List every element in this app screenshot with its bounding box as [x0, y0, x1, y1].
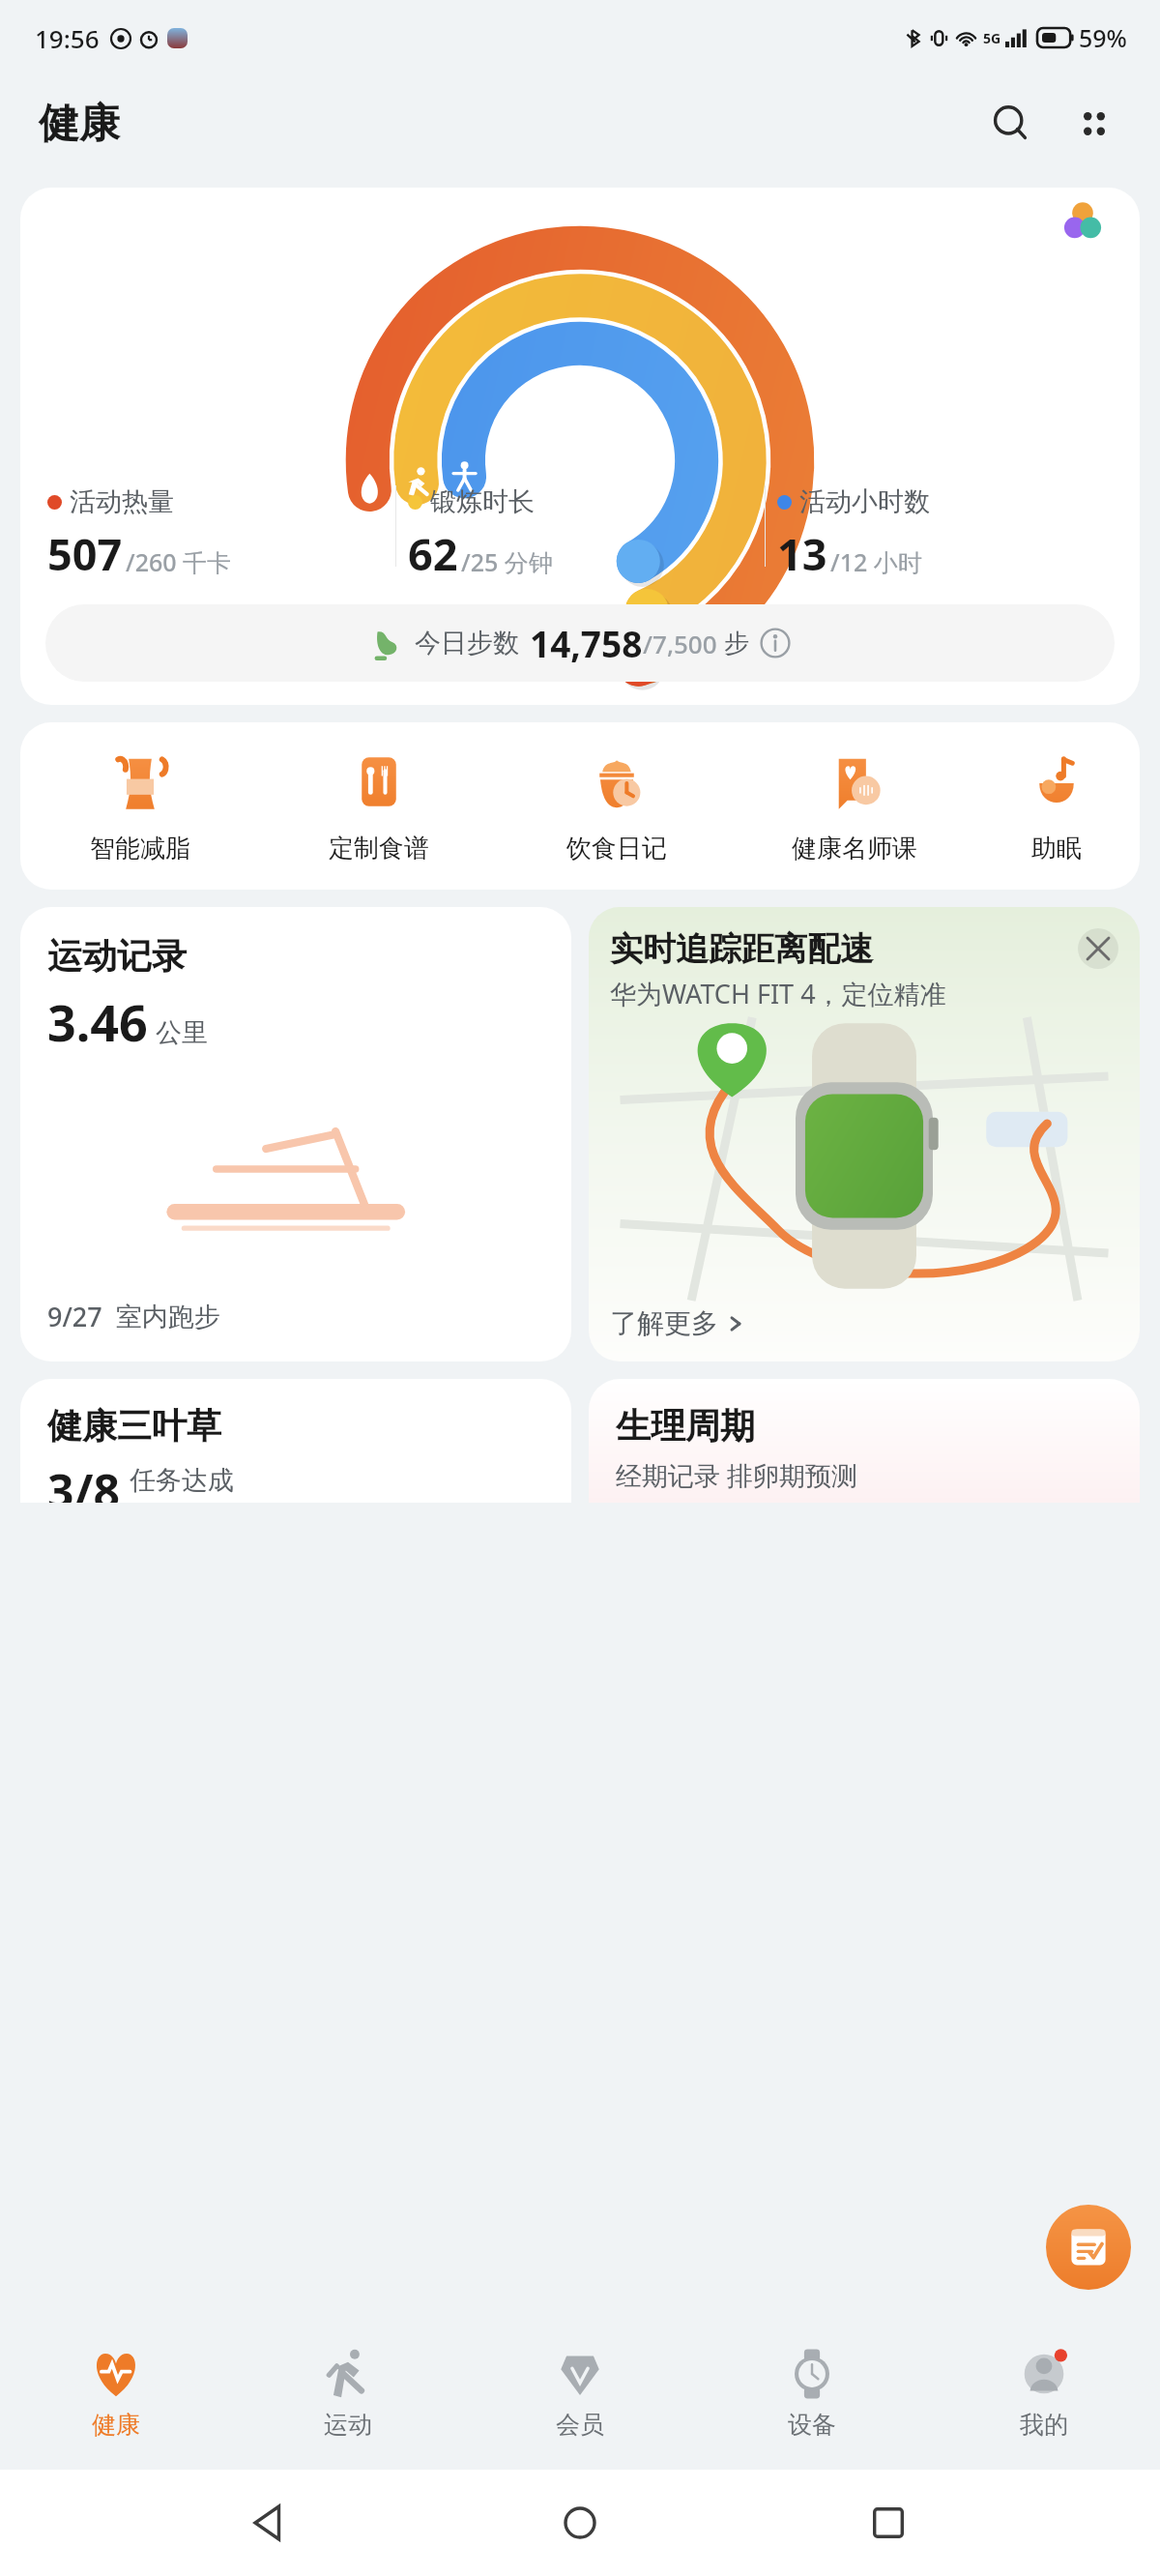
button[interactable]: 我的: [928, 2315, 1160, 2470]
staticText: 5G: [983, 29, 1001, 47]
staticText: 今日步数: [415, 627, 519, 659]
button[interactable]: Add record: [1046, 2205, 1131, 2290]
button[interactable]: 助眠: [973, 747, 1140, 864]
staticText: 会员: [556, 2410, 604, 2440]
button[interactable]: 运动记录: [20, 907, 571, 1361]
button[interactable]: 设备: [696, 2315, 928, 2470]
button[interactable]: 会员: [464, 2315, 696, 2470]
staticText: 59%: [1079, 21, 1127, 54]
button[interactable]: More options: [1063, 93, 1125, 155]
staticText: 活动小时数: [799, 485, 930, 518]
button[interactable]: 活动热量: [20, 188, 1140, 705]
button[interactable]: Search: [980, 93, 1042, 155]
staticText: /7,500: [643, 627, 717, 660]
staticText: 14,758: [530, 619, 643, 667]
button[interactable]: 健康名师课: [736, 747, 973, 864]
staticText: 设备: [788, 2410, 836, 2440]
staticText: 室内跑步: [116, 1301, 220, 1333]
button[interactable]: Health indicators: [1029, 188, 1136, 253]
button[interactable]: 了解更多: [610, 1306, 744, 1340]
button[interactable]: Recents: [852, 2486, 925, 2560]
button[interactable]: 智能减脂: [20, 747, 259, 864]
staticText: /25 分钟: [461, 545, 553, 578]
staticText: 507: [47, 524, 123, 583]
staticText: /12 小时: [830, 545, 922, 578]
button[interactable]: Close ad: [1078, 928, 1118, 969]
staticText: 健康名师课: [792, 833, 917, 864]
staticText: 运动记录: [47, 934, 187, 978]
button[interactable]: 定制食谱: [259, 747, 498, 864]
button[interactable]: 生理周期: [589, 1379, 1140, 1503]
staticText: 62: [408, 524, 458, 583]
staticText: 公里: [156, 1016, 208, 1049]
staticText: 华为WATCH FIT 4，定位精准: [610, 976, 946, 1011]
staticText: 健康: [92, 2410, 140, 2440]
staticText: 生理周期: [616, 1404, 755, 1448]
staticText: 我的: [1020, 2410, 1068, 2440]
staticText: 健康三叶草: [47, 1404, 221, 1448]
staticText: 3.46: [47, 987, 148, 1056]
staticText: 活动热量: [70, 485, 174, 518]
staticText: 3/8: [47, 1459, 120, 1503]
staticText: 运动: [324, 2410, 372, 2440]
button[interactable]: 运动: [232, 2315, 464, 2470]
staticText: 了解更多: [610, 1306, 718, 1340]
staticText: 实时追踪距离配速: [610, 928, 1078, 970]
staticText: 经期记录 排卵期预测: [616, 1457, 858, 1493]
staticText: 任务达成: [130, 1464, 234, 1497]
button[interactable]: 实时追踪距离配速: [589, 907, 1140, 1361]
staticText: 9/27: [47, 1299, 102, 1334]
button[interactable]: 今日步数: [45, 604, 1115, 682]
staticText: 健康: [39, 99, 120, 150]
staticText: 饮食日记: [566, 833, 667, 864]
staticText: 19:56: [35, 21, 100, 55]
button[interactable]: 健康: [0, 2315, 232, 2470]
staticText: 助眠: [1031, 833, 1082, 864]
staticText: 锻炼时长: [430, 485, 535, 518]
button[interactable]: Home: [543, 2486, 617, 2560]
button[interactable]: 健康三叶草: [20, 1379, 571, 1503]
button[interactable]: Back: [235, 2486, 308, 2560]
staticText: 智能减脂: [90, 833, 190, 864]
staticText: /260 千卡: [126, 545, 232, 578]
staticText: 步: [724, 628, 749, 659]
staticText: 13: [777, 524, 827, 583]
staticText: 定制食谱: [329, 833, 429, 864]
button[interactable]: 饮食日记: [498, 747, 736, 864]
